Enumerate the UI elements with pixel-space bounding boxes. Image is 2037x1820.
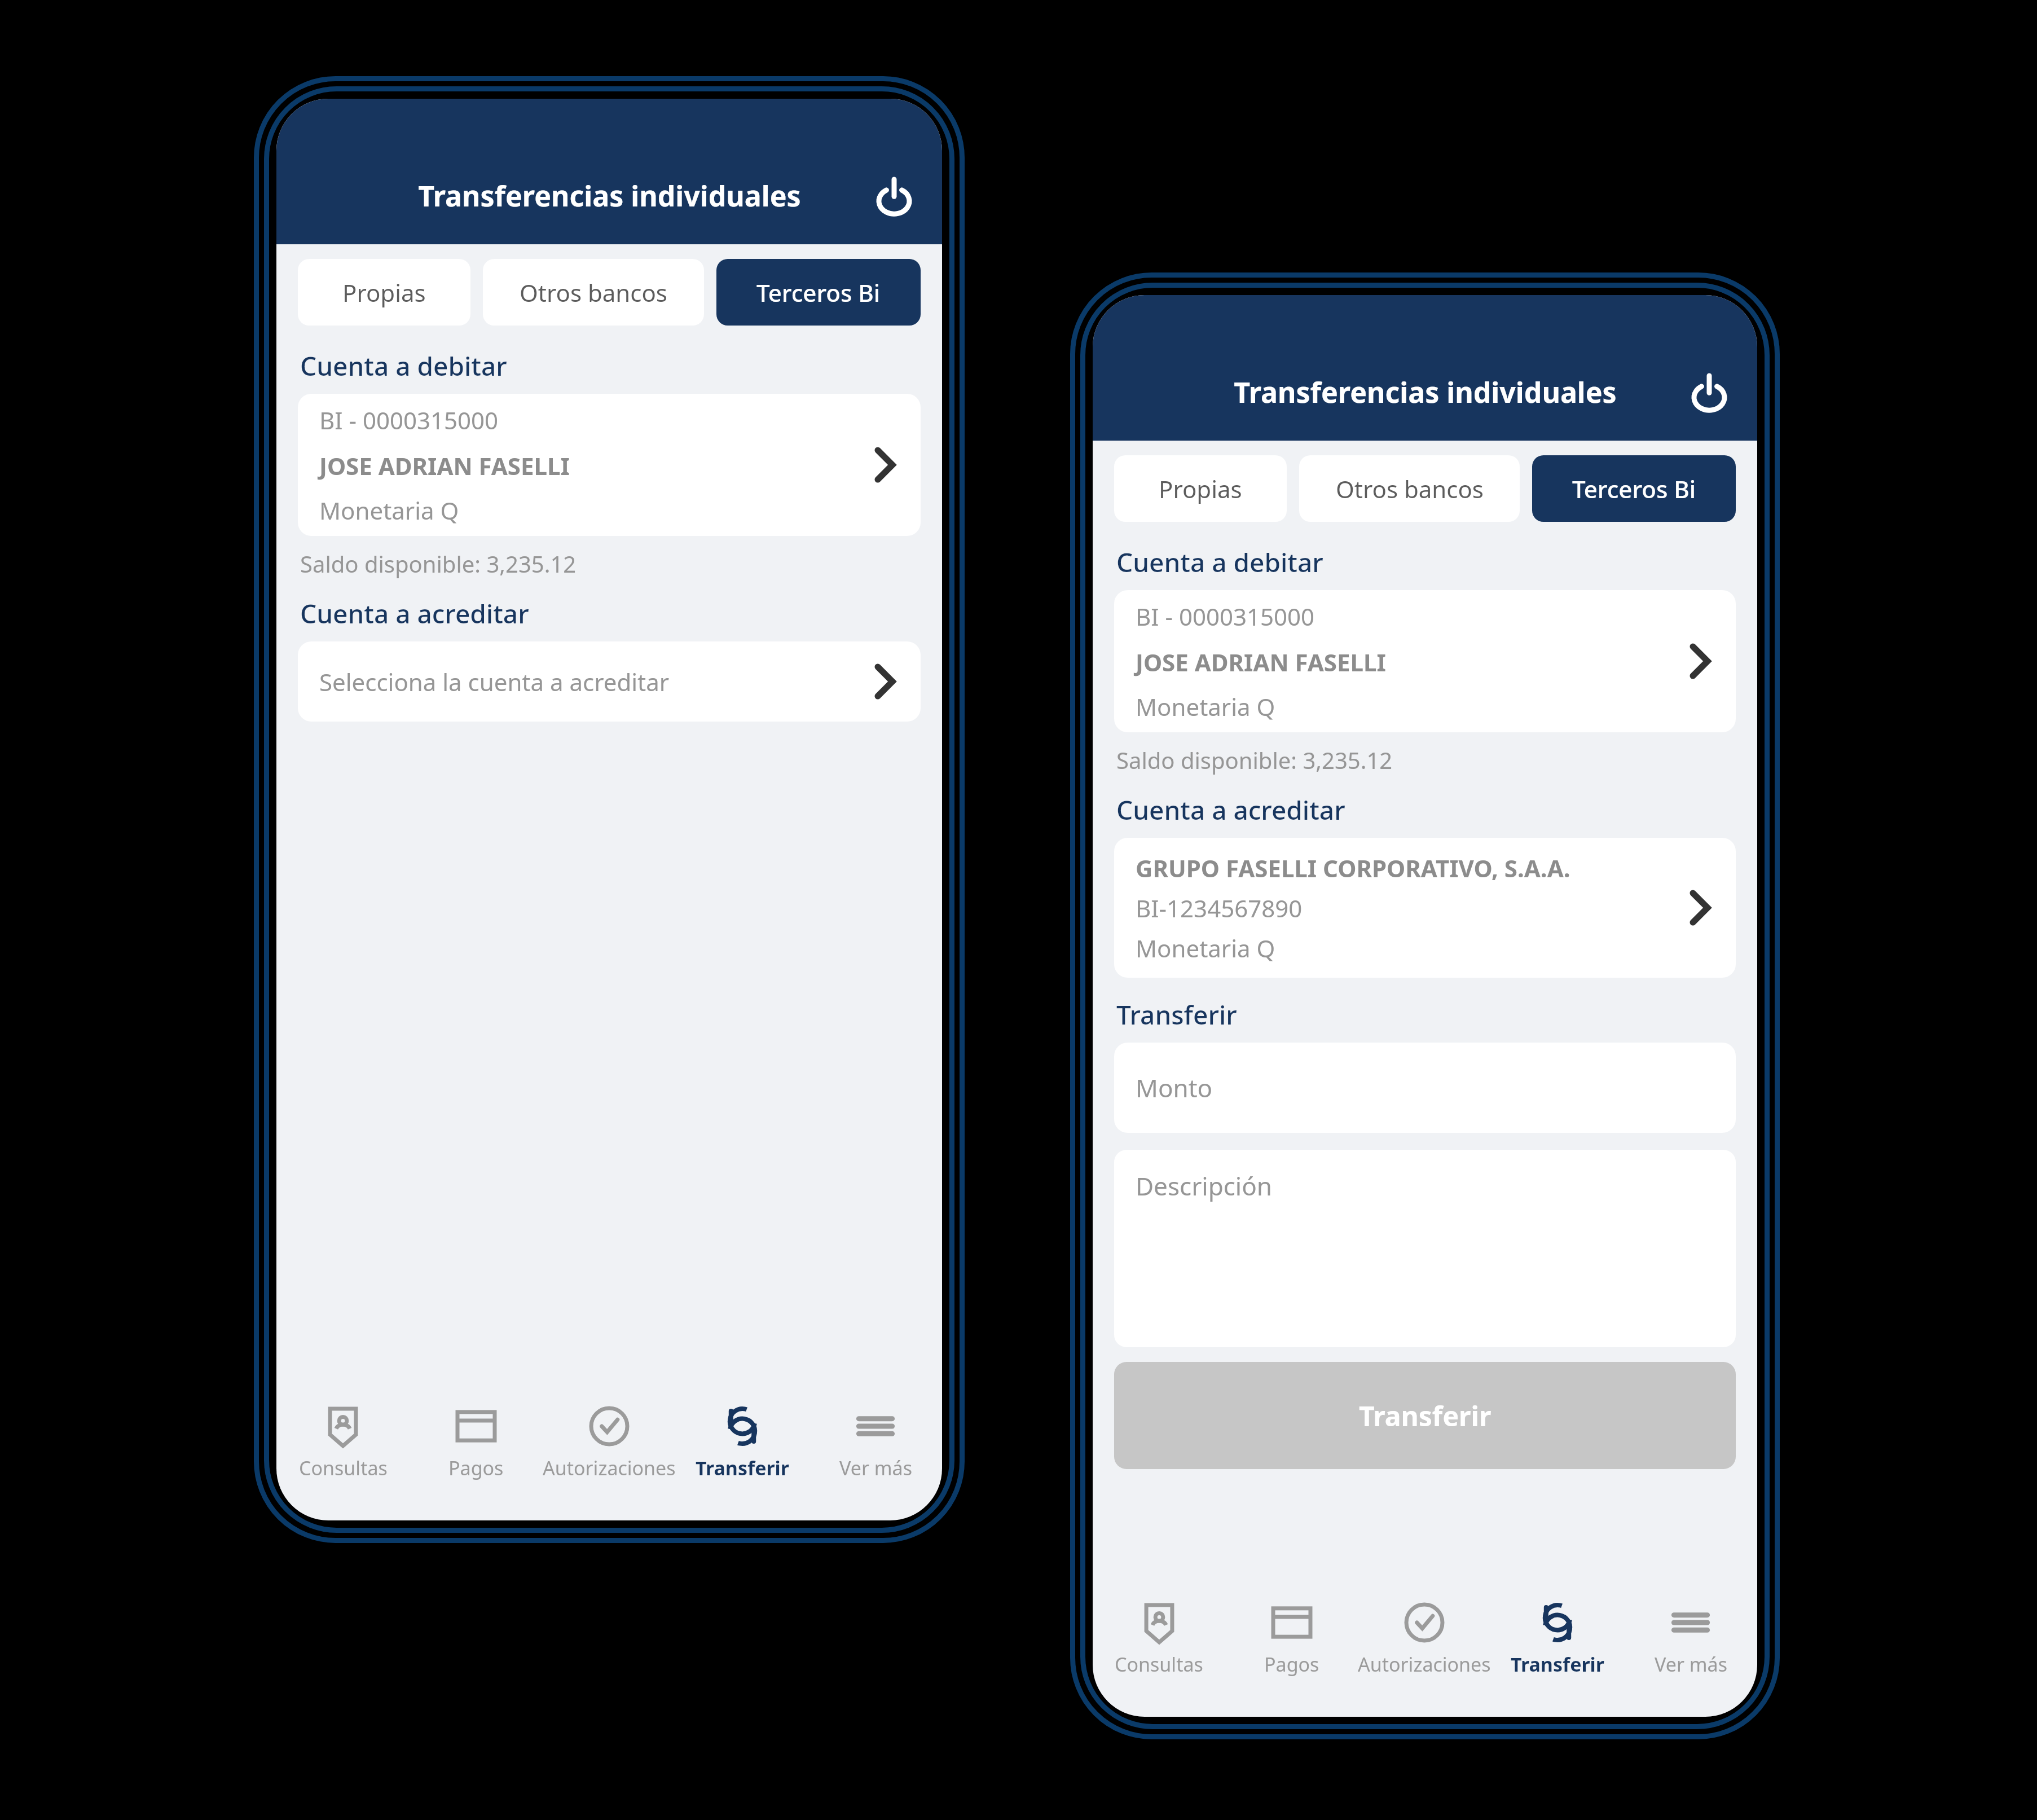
button[interactable]: Autorizaciones <box>543 1391 676 1492</box>
staticText: Cuenta a debitar <box>300 348 507 384</box>
staticText: Propias <box>1159 473 1242 505</box>
staticText: BI - 0000315000 <box>319 404 499 436</box>
staticText: Cuenta a acreditar <box>1116 792 1345 828</box>
button[interactable]: Pagos <box>1225 1587 1358 1689</box>
staticText: Monetaria Q <box>1136 691 1275 723</box>
button[interactable]: Transferir <box>1114 1362 1736 1469</box>
staticText: Cuenta a acreditar <box>300 596 529 631</box>
staticText: Otros bancos <box>1336 473 1484 505</box>
staticText: Otros bancos <box>520 276 667 309</box>
staticText: Saldo disponible: 3,235.12 <box>1116 745 1393 775</box>
staticText: JOSE ADRIAN FASELLI <box>1136 646 1386 678</box>
staticText: Cuenta a debitar <box>1116 544 1323 580</box>
staticText: Terceros Bi <box>756 276 881 309</box>
staticText: Monetaria Q <box>319 494 459 526</box>
button[interactable]: Terceros Bi <box>1532 455 1736 522</box>
staticText: Consultas <box>1115 1651 1203 1677</box>
button[interactable]: GRUPO FASELLI CORPORATIVO, S.A.A. <box>1114 838 1736 978</box>
button[interactable]: Otros bancos <box>1299 455 1520 522</box>
button[interactable]: Transferir <box>1491 1587 1624 1689</box>
button[interactable]: BI - 0000315000 <box>298 394 921 536</box>
button[interactable]: Autorizaciones <box>1358 1587 1491 1689</box>
staticText: Pagos <box>448 1455 504 1481</box>
button[interactable]: Pagos <box>410 1391 543 1492</box>
button[interactable]: Descripción <box>1114 1150 1736 1347</box>
button[interactable]: Consultas <box>276 1391 410 1492</box>
staticText: Consultas <box>299 1455 388 1481</box>
staticText: Transferir <box>1116 997 1237 1032</box>
staticText: Transferir <box>696 1455 789 1481</box>
button[interactable]: BI - 0000315000 <box>1114 590 1736 732</box>
button[interactable]: Monto <box>1114 1043 1736 1133</box>
staticText: Terceros Bi <box>1572 473 1696 505</box>
button[interactable]: Cerrar sesión <box>870 175 918 224</box>
button[interactable]: Terceros Bi <box>716 259 921 326</box>
button[interactable]: Propias <box>1114 455 1287 522</box>
staticText: JOSE ADRIAN FASELLI <box>319 450 570 482</box>
button[interactable]: Selecciona la cuenta a acreditar <box>298 641 921 722</box>
button[interactable]: Ver más <box>809 1391 942 1492</box>
staticText: Transferencias individuales <box>418 177 801 215</box>
staticText: BI - 0000315000 <box>1136 600 1315 632</box>
button[interactable]: Cerrar sesión <box>1685 372 1734 420</box>
button[interactable]: Otros bancos <box>483 259 704 326</box>
staticText: Transferir <box>1511 1651 1604 1677</box>
staticText: BI-1234567890 <box>1136 892 1303 924</box>
button[interactable]: Ver más <box>1624 1587 1757 1689</box>
button[interactable]: Propias <box>298 259 470 326</box>
staticText: Transferencias individuales <box>1234 373 1617 411</box>
staticText: Descripción <box>1136 1169 1272 1203</box>
button[interactable]: Transferir <box>676 1391 809 1492</box>
staticText: Autorizaciones <box>1358 1651 1491 1677</box>
staticText: Ver más <box>839 1455 912 1481</box>
staticText: Monto <box>1136 1071 1714 1105</box>
staticText: GRUPO FASELLI CORPORATIVO, S.A.A. <box>1136 852 1570 884</box>
staticText: Propias <box>342 276 426 309</box>
staticText: Transferir <box>1359 1397 1492 1434</box>
staticText: Autorizaciones <box>543 1455 676 1481</box>
staticText: Selecciona la cuenta a acreditar <box>319 666 868 698</box>
staticText: Ver más <box>1655 1651 1727 1677</box>
staticText: Saldo disponible: 3,235.12 <box>300 548 577 579</box>
staticText: Monetaria Q <box>1136 932 1275 964</box>
staticText: Pagos <box>1264 1651 1319 1677</box>
button[interactable]: Consultas <box>1093 1587 1225 1689</box>
